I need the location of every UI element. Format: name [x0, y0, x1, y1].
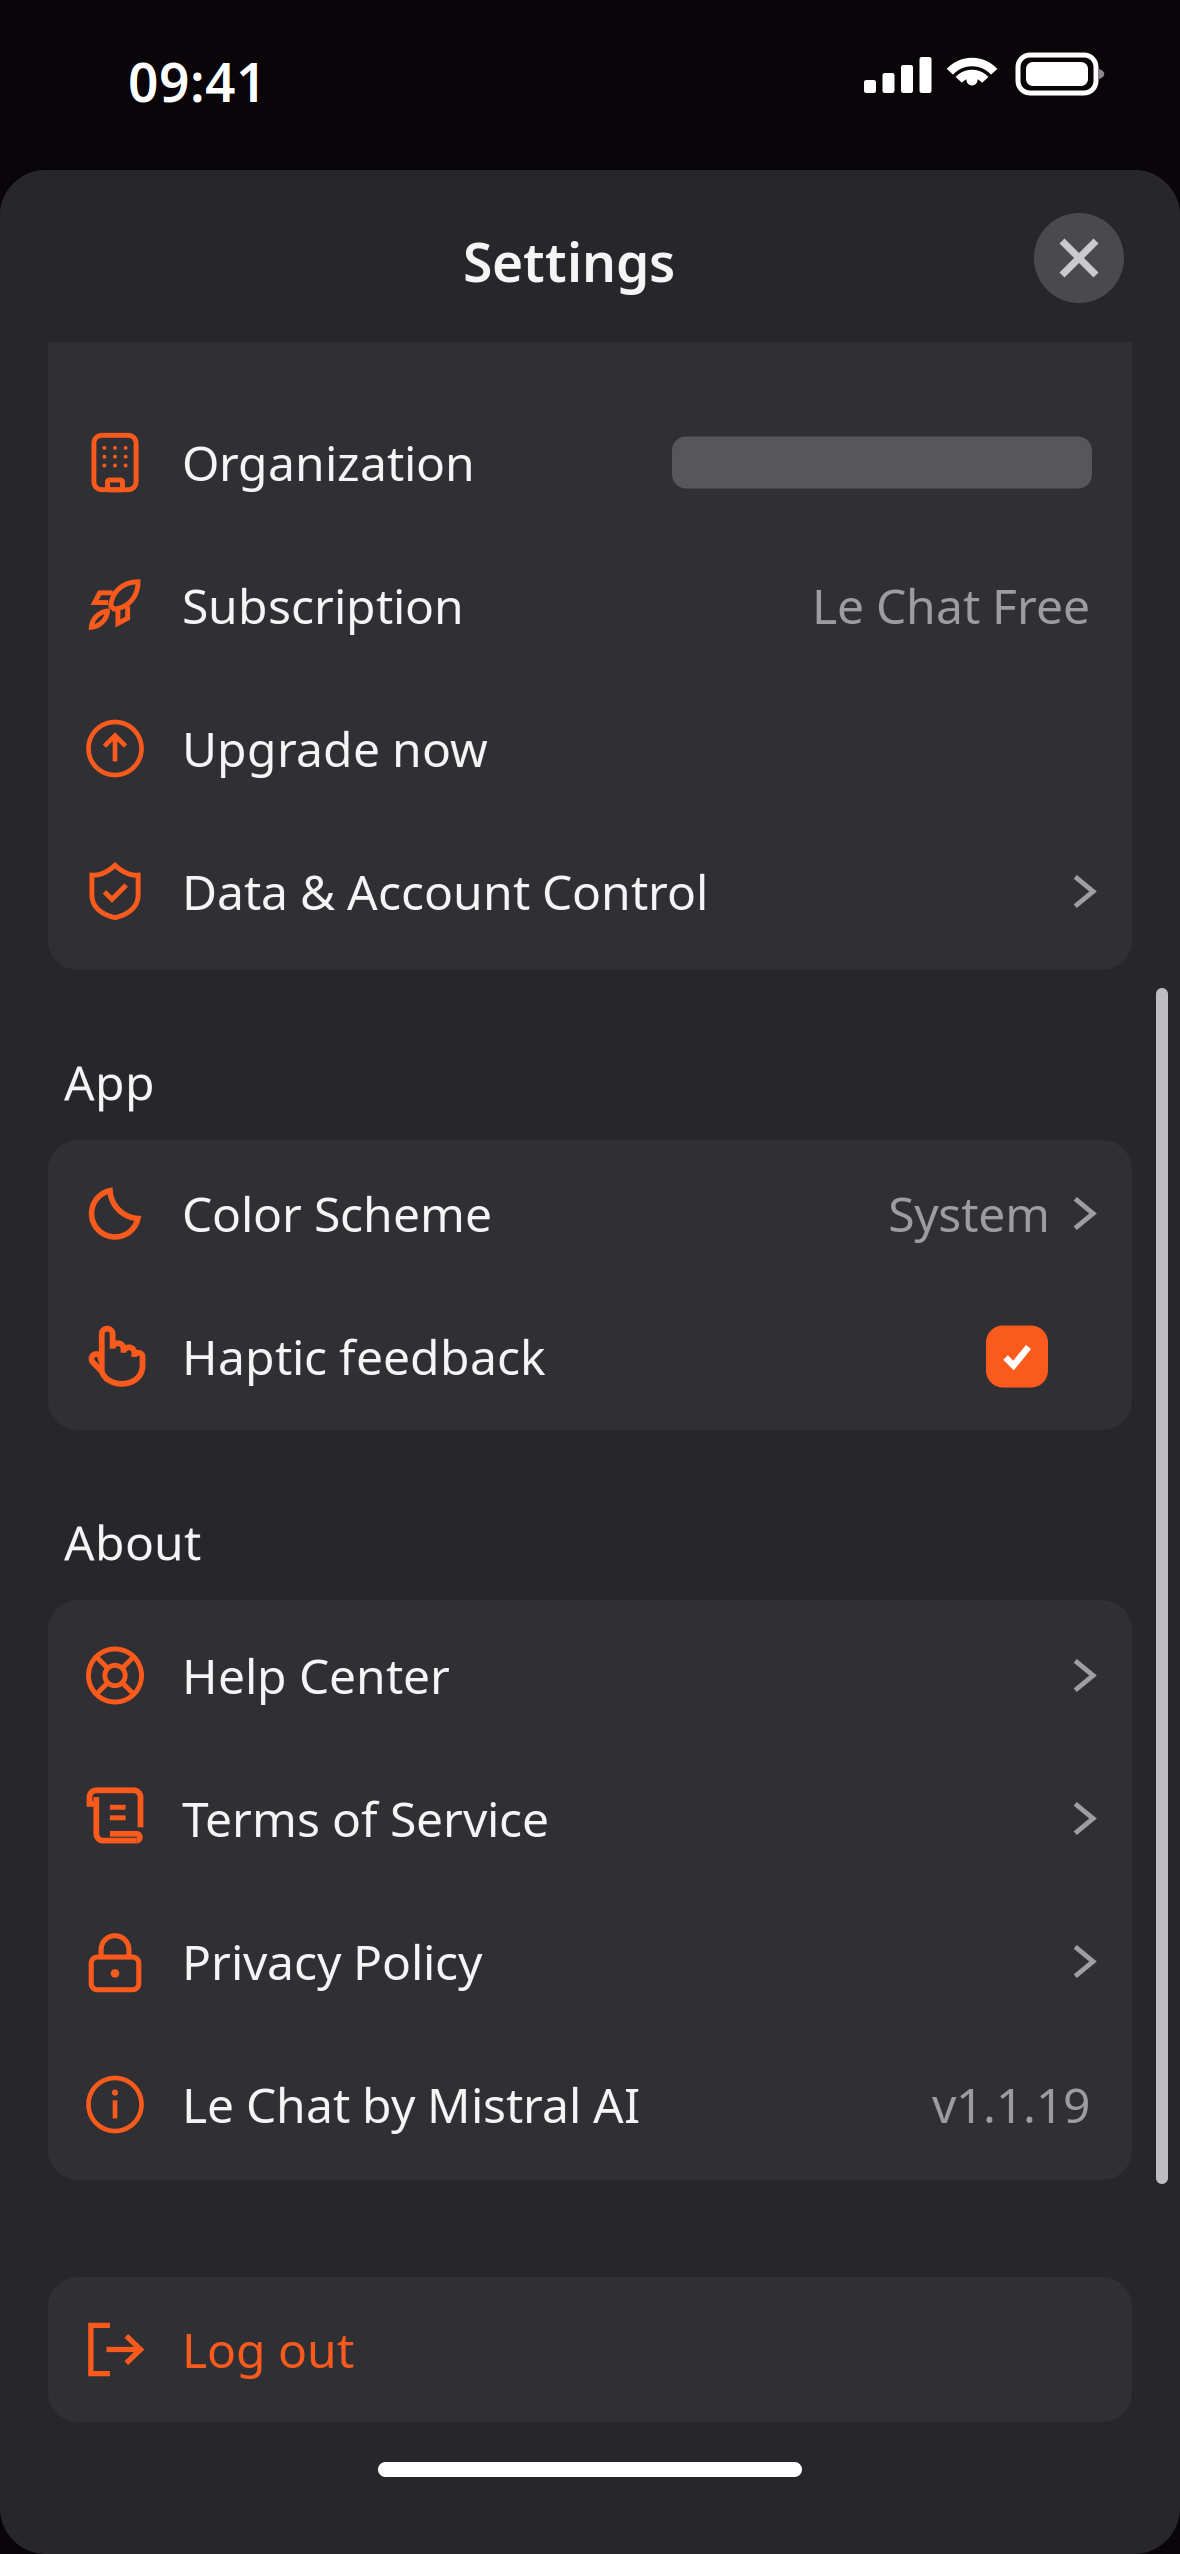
staticText: Data & Account Control [182, 860, 708, 923]
staticText: Privacy Policy [182, 1930, 482, 1993]
staticText: 09:41 [128, 46, 267, 117]
staticText: Le Chat Free [812, 574, 1090, 637]
staticText: Subscription [182, 574, 464, 637]
staticText: App [64, 1050, 155, 1114]
button[interactable]: Le Chat by Mistral AI [48, 2033, 1132, 2176]
staticText: Log out [182, 2318, 354, 2381]
button[interactable]: Log out [48, 2278, 1132, 2421]
staticText: v1.1.19 [932, 2073, 1090, 2136]
staticText: About [64, 1510, 201, 1574]
staticText: Color Scheme [182, 1182, 492, 1245]
staticText: Settings [463, 226, 675, 297]
staticText: Haptic feedback [182, 1325, 546, 1388]
staticText: System [888, 1182, 1050, 1245]
staticText: Terms of Service [182, 1787, 549, 1850]
staticText: Upgrade now [182, 717, 488, 780]
button[interactable]: Privacy Policy [48, 1890, 1132, 2033]
button[interactable]: Upgrade now [48, 677, 1132, 820]
button[interactable]: Color Scheme [48, 1142, 1132, 1285]
button[interactable]: Data & Account Control [48, 820, 1132, 963]
staticText: Le Chat by Mistral AI [182, 2073, 640, 2136]
staticText: Organization [182, 431, 475, 494]
button[interactable]: Organization [48, 391, 1132, 534]
staticText: Help Center [182, 1644, 450, 1707]
button[interactable]: Help Center [48, 1604, 1132, 1747]
button[interactable]: Subscription [48, 534, 1132, 677]
button[interactable]: Haptic feedback [48, 1285, 1132, 1428]
button[interactable]: Close [1034, 213, 1124, 303]
button[interactable]: Terms of Service [48, 1747, 1132, 1890]
